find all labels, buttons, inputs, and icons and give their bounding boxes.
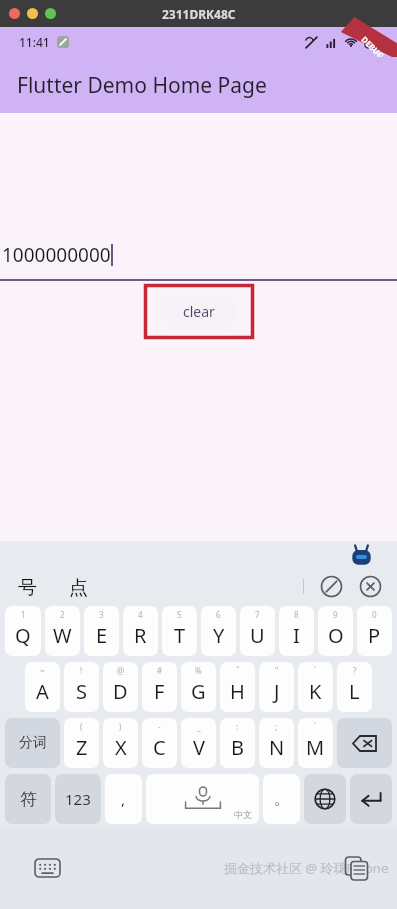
staticText: 1000000000 — [2, 242, 111, 268]
button[interactable]: 7 — [240, 606, 275, 656]
staticText: - — [158, 721, 161, 732]
staticText: # — [157, 665, 163, 676]
button[interactable]: % — [181, 662, 216, 712]
button[interactable]: ( — [64, 718, 99, 768]
staticText: R — [134, 622, 147, 649]
staticText: K — [309, 678, 322, 705]
button[interactable]: 点 — [69, 576, 88, 600]
button[interactable]: 符 — [5, 774, 51, 824]
staticText: L — [349, 678, 360, 705]
button[interactable]: ; — [259, 718, 294, 768]
button[interactable]: ` — [298, 718, 333, 768]
button[interactable]: , — [105, 774, 142, 824]
button[interactable]: 号 — [18, 576, 37, 600]
staticText: Z — [76, 734, 88, 761]
staticText: N — [269, 734, 285, 761]
staticText: P — [368, 622, 381, 649]
button[interactable]: Switch keyboard — [34, 858, 61, 878]
button[interactable]: ˇ — [220, 662, 255, 712]
staticText: F — [154, 678, 165, 705]
staticText: 3 — [99, 609, 104, 620]
button[interactable]: _ — [181, 718, 216, 768]
staticText: 分词 — [19, 734, 47, 752]
staticText: 0 — [372, 609, 377, 620]
staticText: W — [53, 622, 72, 649]
staticText: 4 — [138, 609, 143, 620]
staticText: A — [36, 678, 49, 705]
staticText: 8 — [294, 609, 299, 620]
staticText: ; — [275, 721, 278, 732]
staticText: 符 — [20, 789, 37, 810]
staticText: V — [193, 734, 205, 761]
staticText: X — [115, 734, 127, 761]
button[interactable]: Recent apps — [344, 856, 369, 881]
button[interactable]: 8 — [279, 606, 314, 656]
button[interactable]: - — [142, 718, 177, 768]
staticText: G — [191, 678, 206, 705]
staticText: ˇ — [236, 665, 240, 676]
button[interactable]: ` — [298, 662, 333, 712]
staticText: Y — [213, 622, 225, 649]
staticText: : — [236, 721, 239, 732]
button[interactable]: 9 — [318, 606, 353, 656]
staticText: 11:41 — [19, 34, 50, 50]
staticText: % — [195, 665, 202, 676]
staticText: J — [274, 678, 280, 705]
button[interactable]: Enter — [350, 774, 392, 824]
staticText: S — [76, 678, 87, 705]
button[interactable]: : — [220, 718, 255, 768]
button[interactable]: Backspace — [337, 718, 392, 768]
staticText: Flutter Demo Home Page — [17, 71, 267, 100]
button[interactable]: 3 — [84, 606, 119, 656]
button[interactable]: 。 — [263, 774, 300, 824]
button[interactable]: ~ — [25, 662, 60, 712]
button[interactable]: Close keyboard panel — [359, 575, 382, 598]
staticText: ! — [80, 665, 83, 676]
button[interactable]: Assistant — [350, 545, 373, 568]
staticText: C — [153, 734, 166, 761]
button[interactable]: 123 — [55, 774, 101, 824]
button[interactable]: 4 — [123, 606, 158, 656]
staticText: 中文 — [234, 809, 252, 820]
button[interactable]: Switch language — [304, 774, 346, 824]
staticText: ( — [80, 721, 83, 732]
button[interactable]: @ — [103, 662, 138, 712]
staticText: U — [250, 622, 265, 649]
staticText: DEBUG — [359, 34, 387, 61]
staticText: 掘金技术社区 @ 玲珑Pelone — [224, 859, 389, 877]
staticText: 7 — [255, 609, 260, 620]
button[interactable]: # — [142, 662, 177, 712]
staticText: ` — [314, 721, 317, 732]
staticText: I — [293, 622, 300, 649]
button[interactable]: 分词 — [5, 718, 60, 768]
staticText: 1 — [21, 609, 26, 620]
button[interactable]: ? — [337, 662, 372, 712]
staticText: E — [96, 622, 108, 649]
button[interactable]: 5 — [162, 606, 197, 656]
button[interactable]: Maximize window — [45, 8, 56, 19]
button[interactable]: Space — [146, 774, 259, 824]
staticText: 100 — [369, 37, 382, 47]
button[interactable]: clear — [144, 284, 254, 339]
button[interactable]: 0 — [357, 606, 392, 656]
staticText: M — [306, 734, 325, 761]
button[interactable]: 1 — [5, 606, 41, 656]
staticText: 5 — [177, 609, 182, 620]
staticText: O — [328, 622, 344, 649]
button[interactable]: ! — [64, 662, 99, 712]
staticText: 123 — [65, 789, 91, 809]
button[interactable]: Minimize window — [27, 8, 38, 19]
staticText: " — [275, 665, 279, 676]
staticText: _ — [197, 721, 201, 732]
staticText: D — [113, 678, 128, 705]
staticText: ) — [119, 721, 122, 732]
staticText: ? — [353, 665, 357, 676]
button[interactable]: 2 — [45, 606, 80, 656]
button[interactable]: Close window — [9, 8, 20, 19]
button[interactable]: Clipboard — [320, 575, 343, 598]
button[interactable]: " — [259, 662, 294, 712]
button[interactable]: 6 — [201, 606, 236, 656]
staticText: ` — [314, 665, 317, 676]
staticText: H — [230, 678, 245, 705]
button[interactable]: ) — [103, 718, 138, 768]
